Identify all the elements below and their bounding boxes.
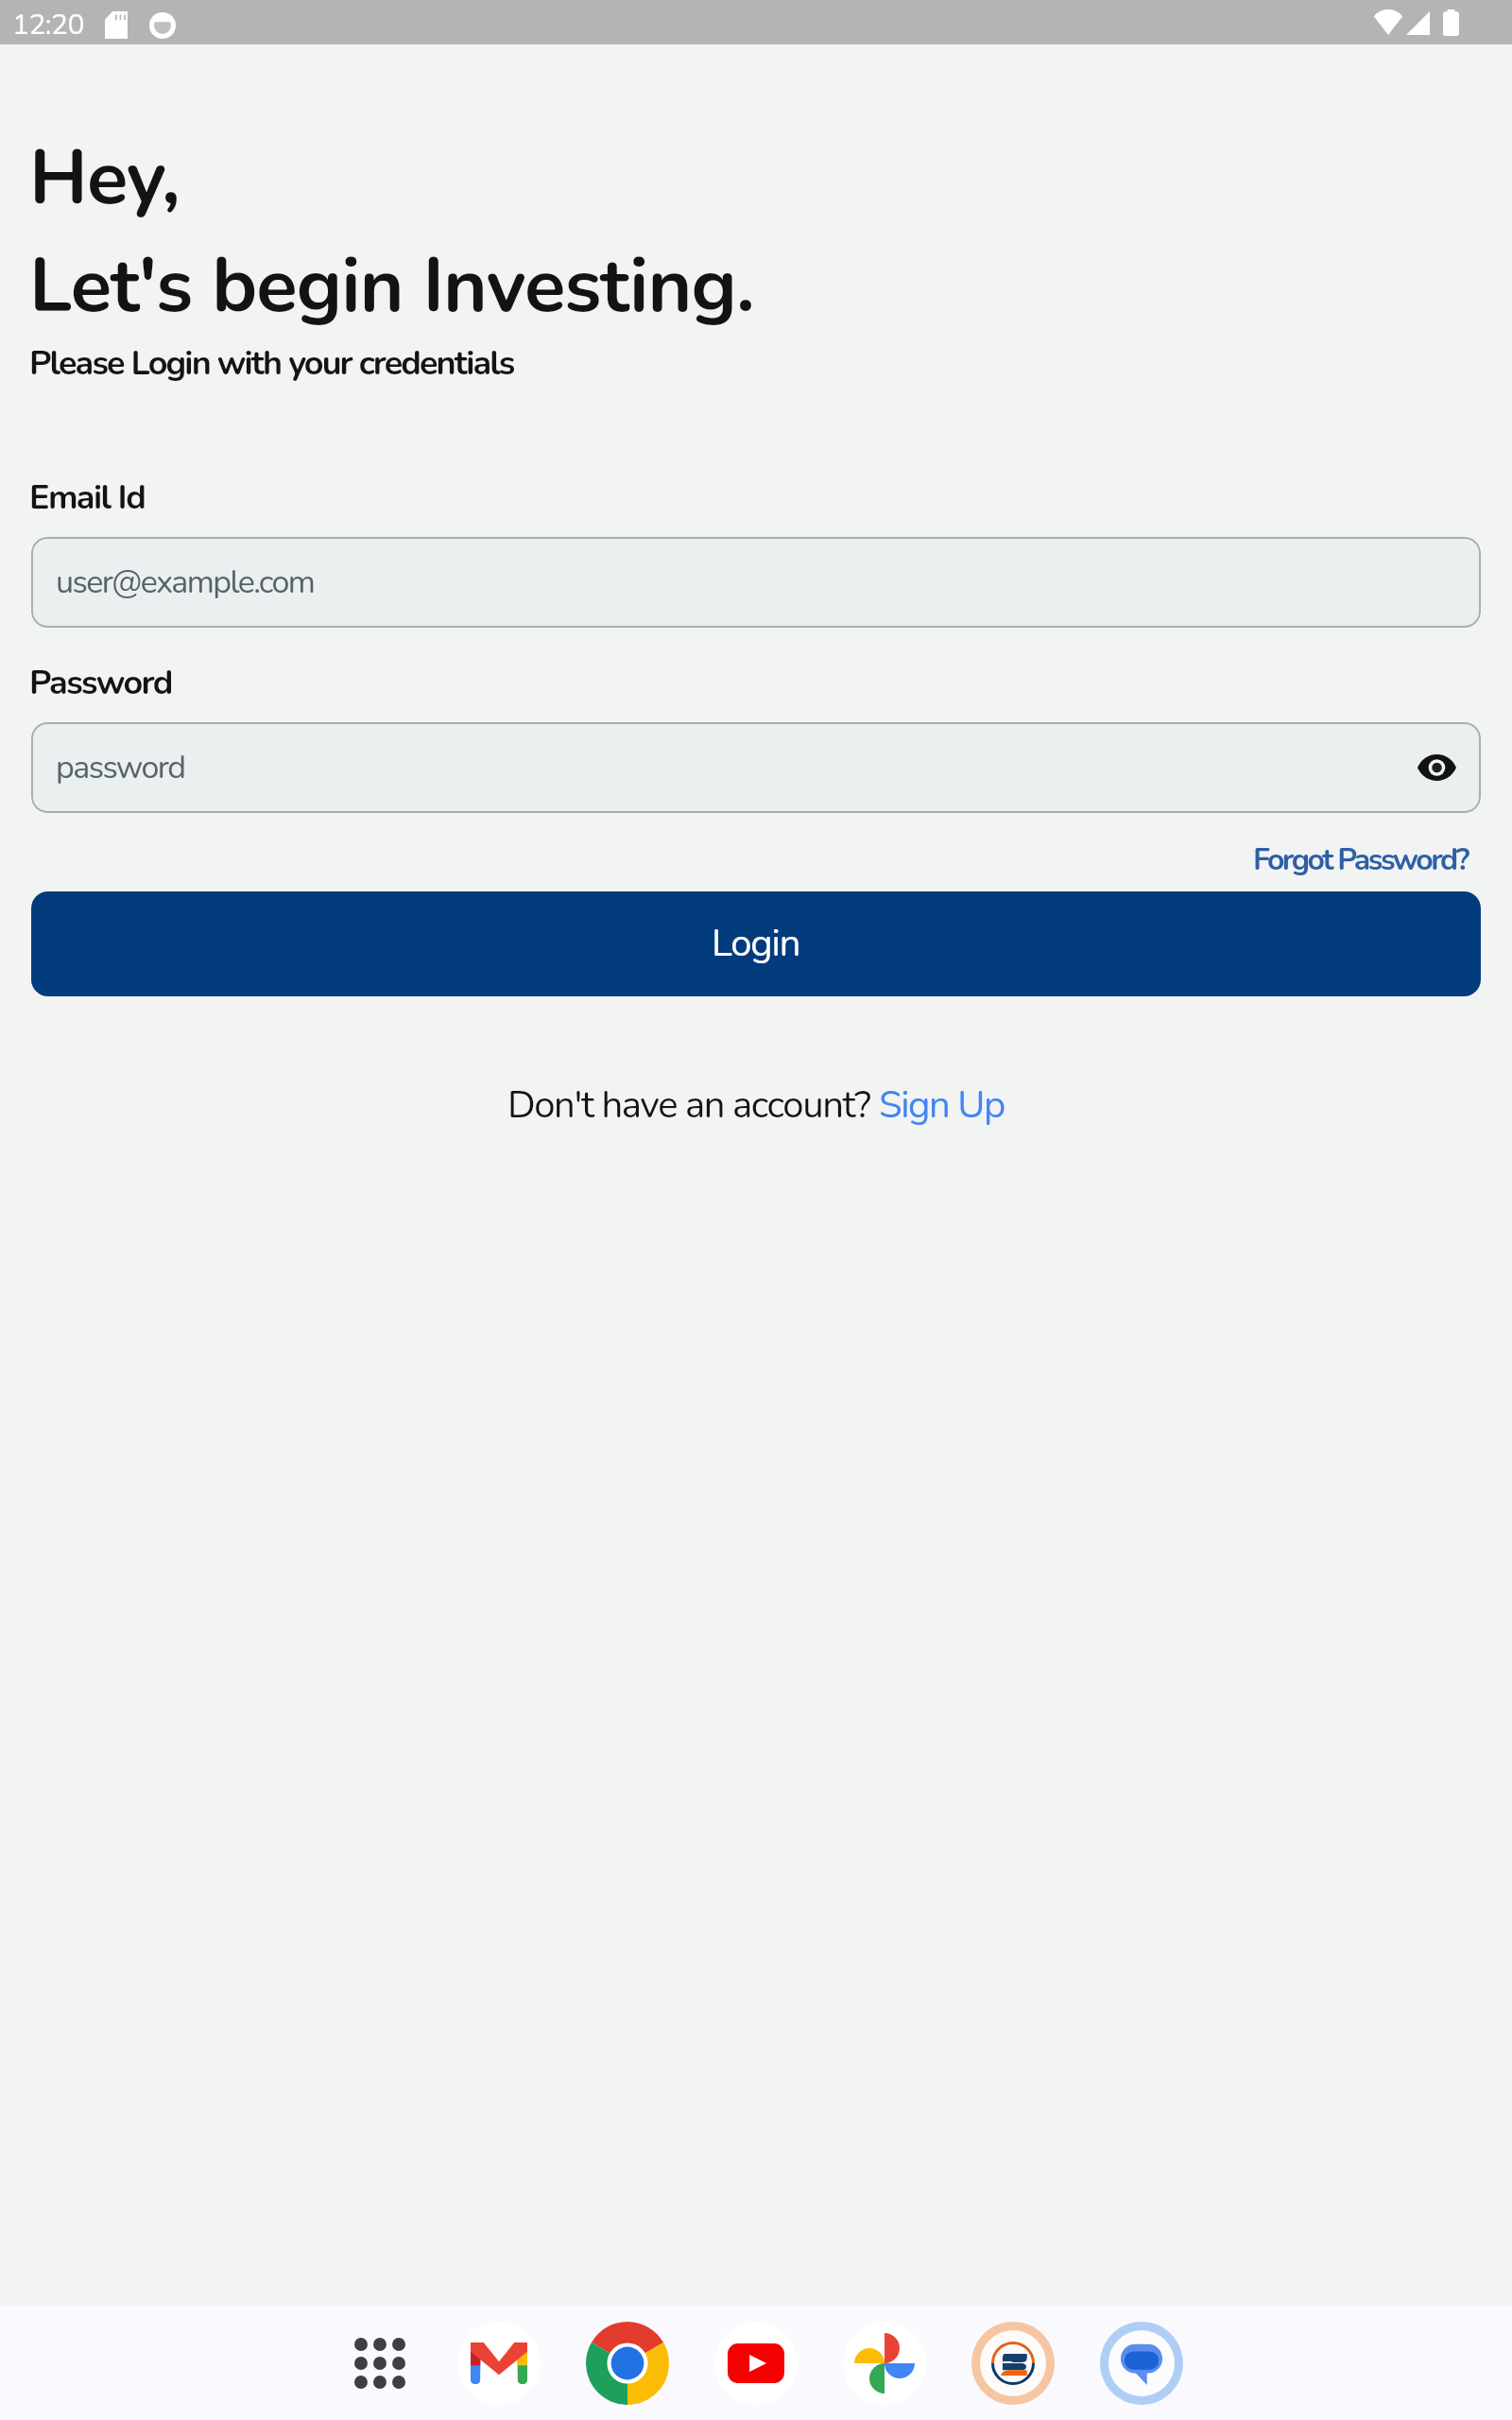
button[interactable]: password (31, 722, 1481, 813)
button[interactable]: Photos (843, 2322, 926, 2405)
staticText: Login (712, 918, 800, 970)
button[interactable]: YouTube (714, 2322, 798, 2405)
staticText: Don't have an account? (507, 1080, 879, 1132)
staticText: password (56, 746, 185, 789)
button[interactable]: Chrome (586, 2322, 669, 2405)
button[interactable]: Investing app (971, 2322, 1055, 2405)
staticText: 12:20 (12, 6, 84, 44)
button[interactable]: user@example.com (31, 537, 1481, 628)
staticText: Password (29, 660, 172, 706)
staticText: Email Id (29, 475, 146, 521)
staticText: user@example.com (56, 561, 315, 604)
staticText: Let's begin Investing. (29, 234, 754, 337)
button[interactable]: Sign Up (879, 1080, 1005, 1132)
button[interactable]: Messages (1100, 2322, 1183, 2405)
button[interactable]: Show password (1409, 740, 1464, 795)
button[interactable]: Forgot Password? (1249, 836, 1471, 885)
button[interactable]: Gmail (457, 2322, 541, 2405)
staticText: Please Login with your credentials (29, 340, 514, 387)
staticText: Hey, (29, 127, 180, 230)
button[interactable]: All apps (329, 2322, 412, 2405)
button[interactable]: Login (31, 891, 1481, 996)
